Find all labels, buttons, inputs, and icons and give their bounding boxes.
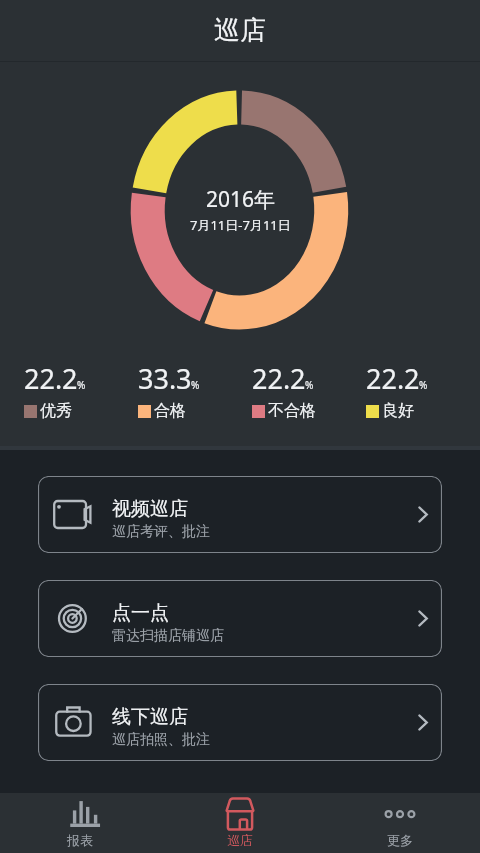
staticText: % bbox=[77, 378, 86, 392]
staticText: 不合格 bbox=[268, 401, 316, 421]
staticText: % bbox=[419, 378, 428, 392]
staticText: 巡店拍照、批注 bbox=[112, 731, 210, 749]
button[interactable]: 巡店 bbox=[160, 793, 320, 853]
staticText: 2016年 bbox=[206, 185, 276, 214]
staticText: 优秀 bbox=[40, 401, 72, 421]
button[interactable]: 视频巡店 bbox=[38, 476, 442, 553]
button[interactable]: 更多 bbox=[320, 793, 480, 853]
staticText: 巡店 bbox=[227, 832, 253, 848]
staticText: 线下巡店 bbox=[112, 705, 188, 729]
staticText: % bbox=[305, 378, 314, 392]
staticText: 更多 bbox=[387, 832, 413, 848]
staticText: 点一点 bbox=[112, 601, 169, 625]
staticText: 合格 bbox=[154, 401, 186, 421]
staticText: 22.2 bbox=[24, 360, 78, 397]
staticText: 22.2 bbox=[366, 360, 420, 397]
button[interactable]: 线下巡店 bbox=[38, 684, 442, 761]
staticText: % bbox=[191, 378, 200, 392]
staticText: 33.3 bbox=[138, 360, 192, 397]
button[interactable]: 报表 bbox=[0, 793, 160, 853]
staticText: 视频巡店 bbox=[112, 497, 188, 521]
staticText: 22.2 bbox=[252, 360, 306, 397]
staticText: 雷达扫描店铺巡店 bbox=[112, 627, 224, 645]
button[interactable]: 点一点 bbox=[38, 580, 442, 657]
staticText: 巡店考评、批注 bbox=[112, 523, 210, 541]
staticText: 巡店 bbox=[214, 14, 266, 47]
staticText: 报表 bbox=[67, 832, 93, 848]
staticText: 良好 bbox=[382, 401, 414, 421]
staticText: 7月11日-7月11日 bbox=[190, 216, 291, 234]
